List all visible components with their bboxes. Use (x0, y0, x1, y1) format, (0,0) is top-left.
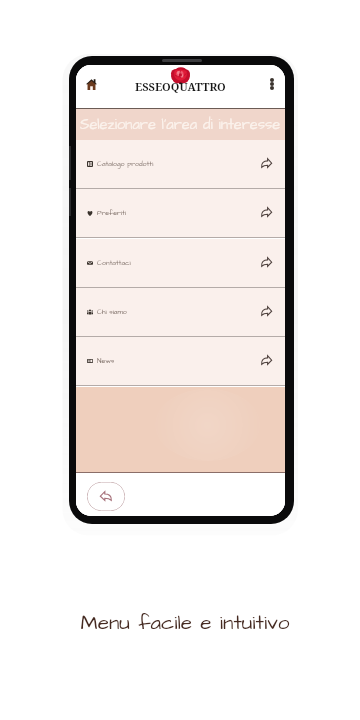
button[interactable]: More options (262, 74, 282, 94)
button[interactable]: News (76, 337, 285, 386)
button[interactable]: Home (81, 74, 102, 95)
staticText: News (97, 356, 115, 366)
staticText: Contattaci (97, 258, 131, 268)
staticText: ESSEOQUATTRO (135, 79, 226, 94)
staticText: Selezionare l'area di interesse (80, 115, 281, 135)
button[interactable]: Contattaci (76, 239, 285, 288)
button[interactable]: Catalogo prodotti (76, 140, 285, 189)
button[interactable]: Preferiti (76, 189, 285, 238)
button[interactable]: Back (87, 482, 125, 511)
staticText: Preferiti (97, 208, 126, 218)
button[interactable]: Chi siamo (76, 288, 285, 337)
staticText: Chi siamo (97, 307, 127, 317)
staticText: Menu facile e intuitivo (80, 608, 290, 637)
staticText: Catalogo prodotti (97, 159, 154, 169)
